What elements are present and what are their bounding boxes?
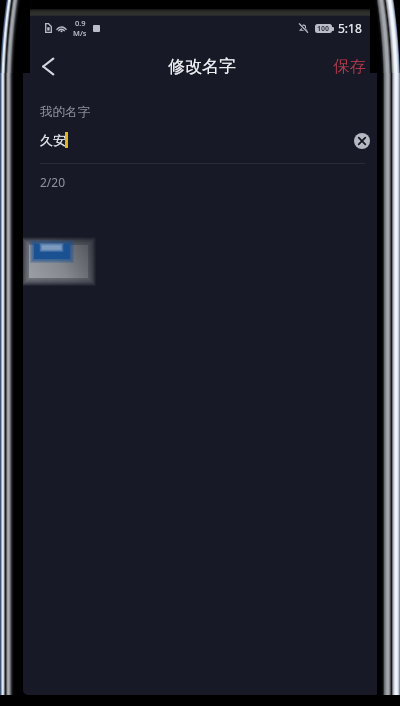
- staticText: 久安: [40, 132, 66, 148]
- staticText: 0.9: [75, 18, 86, 28]
- button[interactable]: Clear text: [352, 131, 372, 151]
- staticText: 100: [317, 24, 330, 33]
- staticText: 2/20: [40, 174, 66, 190]
- staticText: 5:18: [338, 20, 362, 36]
- staticText: 修改名字: [168, 56, 236, 77]
- staticText: M/s: [73, 28, 87, 38]
- staticText: 保存: [333, 56, 366, 77]
- button[interactable]: Back: [28, 46, 68, 86]
- staticText: 我的名字: [40, 104, 90, 120]
- button[interactable]: 保存: [319, 46, 380, 87]
